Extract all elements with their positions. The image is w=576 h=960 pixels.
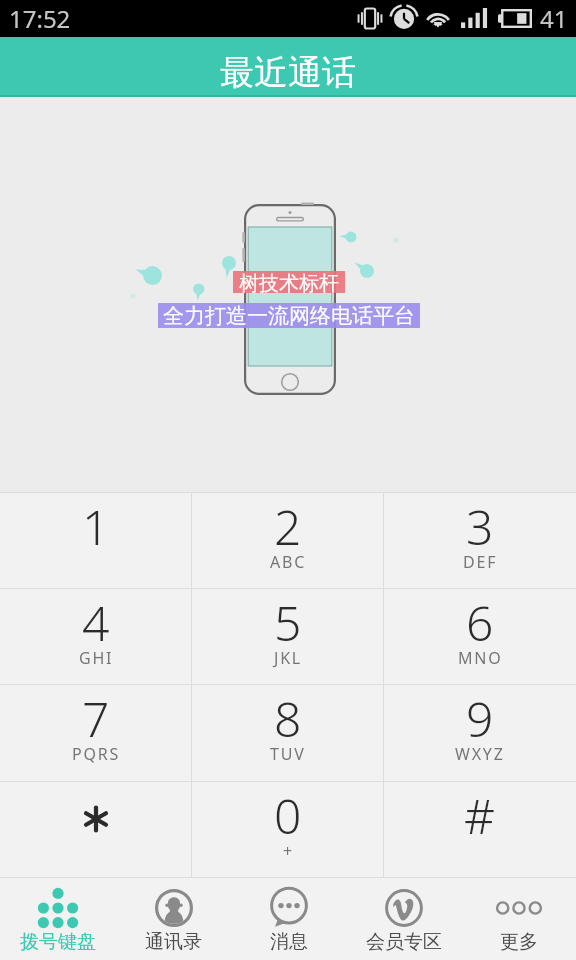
button[interactable]: 7: [0, 685, 192, 781]
button[interactable]: 6: [384, 589, 576, 684]
staticText: 更多: [500, 930, 538, 954]
staticText: MNO: [458, 647, 503, 669]
staticText: 拨号键盘: [20, 930, 96, 954]
button[interactable]: Messages: [231, 878, 346, 960]
button[interactable]: 9: [384, 685, 576, 781]
staticText: 树技术标杆: [239, 271, 339, 293]
button[interactable]: 4: [0, 589, 192, 684]
staticText: 7: [82, 686, 110, 751]
staticText: 17:52: [9, 2, 71, 35]
button[interactable]: 5: [192, 589, 384, 684]
staticText: 6: [466, 590, 494, 655]
staticText: 4: [82, 590, 110, 655]
staticText: 0: [274, 783, 302, 848]
staticText: JKL: [274, 647, 303, 669]
staticText: 消息: [270, 930, 308, 954]
staticText: 3: [466, 494, 494, 559]
staticText: #: [464, 783, 496, 848]
staticText: WXYZ: [455, 743, 505, 765]
button[interactable]: 2: [192, 493, 384, 588]
button[interactable]: 1: [0, 493, 192, 588]
staticText: 1: [82, 494, 110, 559]
button[interactable]: Dial pad: [0, 878, 116, 960]
button[interactable]: More: [461, 878, 576, 960]
staticText: 全力打造一流网络电话平台: [163, 303, 415, 328]
button[interactable]: 3: [384, 493, 576, 588]
button[interactable]: 0: [192, 782, 384, 877]
button[interactable]: [0, 782, 192, 877]
staticText: 会员专区: [366, 930, 442, 954]
staticText: 8: [274, 686, 302, 751]
staticText: 5: [274, 590, 302, 655]
staticText: 最近通话: [220, 51, 356, 94]
staticText: GHI: [79, 647, 114, 669]
staticText: 2: [274, 494, 302, 559]
staticText: ABC: [270, 551, 307, 573]
staticText: 通讯录: [145, 930, 202, 954]
staticText: 9: [466, 686, 494, 751]
button[interactable]: #: [384, 782, 576, 877]
staticText: DEF: [463, 551, 498, 573]
staticText: PQRS: [72, 743, 121, 765]
staticText: 41: [540, 2, 568, 35]
button[interactable]: Member zone: [346, 878, 461, 960]
button[interactable]: 8: [192, 685, 384, 781]
staticText: TUV: [270, 743, 306, 765]
staticText: +: [283, 840, 294, 862]
button[interactable]: Contacts: [116, 878, 231, 960]
